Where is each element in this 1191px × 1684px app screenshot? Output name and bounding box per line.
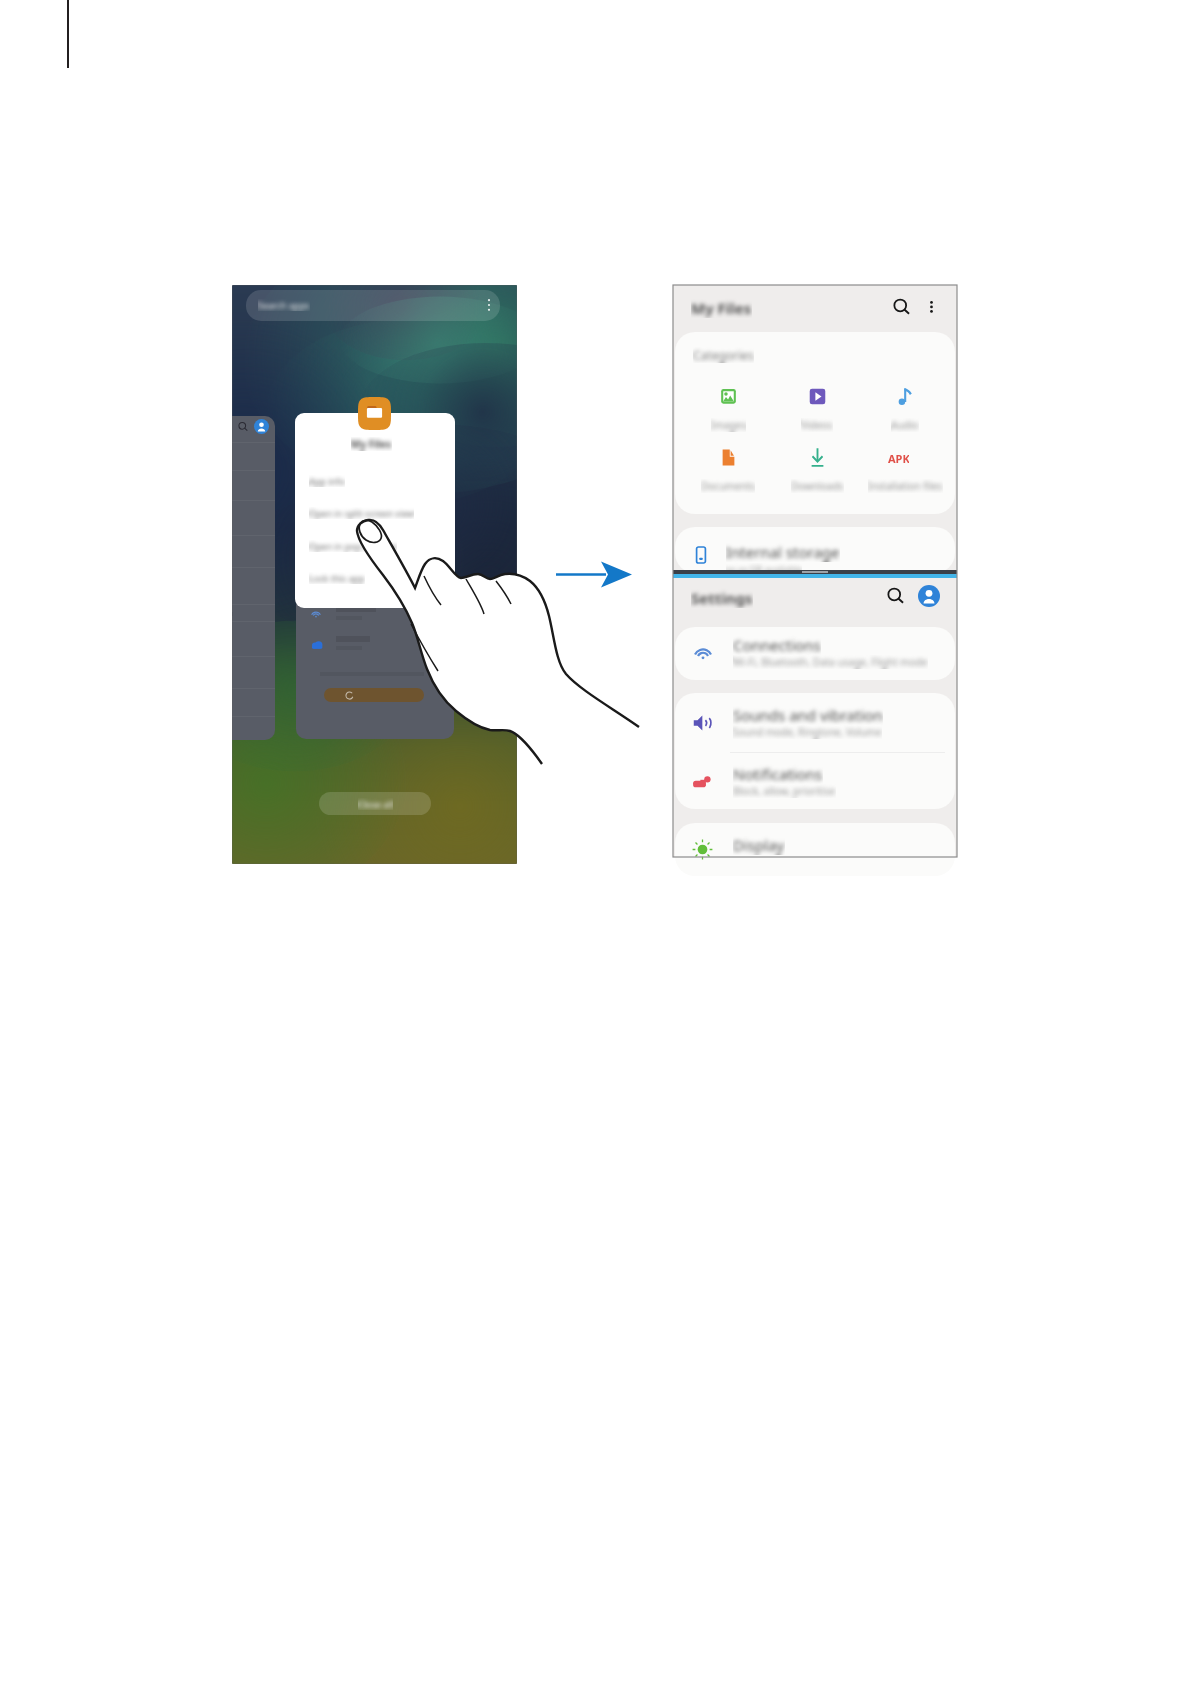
staticText: Open in split screen view (309, 507, 414, 519)
button[interactable]: Display (675, 823, 955, 876)
button[interactable]: App info (295, 465, 455, 497)
button[interactable]: More options (922, 298, 941, 317)
button[interactable]: Audio (863, 386, 947, 438)
button[interactable]: Lock this app (295, 562, 455, 594)
button[interactable]: Open in split screen view (295, 497, 455, 529)
button[interactable]: My Files recent task (296, 416, 454, 739)
staticText: Internal storage (726, 542, 840, 562)
button[interactable]: Sounds and vibration (675, 693, 955, 752)
staticText: App info (309, 475, 345, 487)
staticText: Close all (358, 798, 393, 810)
button[interactable]: Search (891, 297, 912, 318)
staticText: Sounds and vibration (733, 705, 883, 725)
staticText: Connections (733, 635, 821, 655)
staticText: Wi-Fi, Bluetooth, Data usage, Flight mod… (733, 655, 928, 669)
staticText: APK (888, 451, 909, 466)
button[interactable]: Recent app (232, 416, 275, 740)
button[interactable]: APK (863, 447, 947, 499)
staticText: Settings (691, 588, 753, 608)
staticText: Search apps (258, 299, 310, 311)
staticText: Documents (701, 479, 755, 493)
staticText: Audio (891, 418, 919, 432)
staticText: My Files (351, 437, 392, 451)
staticText: Display (733, 835, 785, 855)
staticText: My Files (691, 298, 752, 318)
button[interactable]: Downloads (775, 447, 859, 499)
button[interactable]: More options (484, 293, 494, 317)
staticText: Sound mode, Ringtone, Volume (733, 725, 882, 739)
button[interactable]: Internal storage (675, 527, 955, 570)
staticText: Installation files (868, 479, 943, 493)
staticText: Notifications (733, 764, 823, 784)
button[interactable]: Search settings (885, 586, 906, 607)
staticText: Videos (801, 418, 833, 432)
button[interactable]: Open in pop-up view (295, 530, 455, 562)
button[interactable]: Search apps (246, 290, 500, 321)
staticText: Images (711, 418, 746, 432)
button[interactable]: Documents (686, 447, 770, 499)
staticText: xx.xx GB available (726, 563, 802, 570)
button[interactable]: Videos (775, 386, 859, 438)
button[interactable]: Samsung account (918, 585, 940, 607)
button[interactable]: Images (686, 386, 770, 438)
staticText: Downloads (791, 479, 844, 493)
staticText: Open in pop-up view (309, 540, 397, 552)
staticText: Block, allow, prioritise (733, 784, 836, 798)
button[interactable]: Connections (675, 627, 955, 680)
staticText: Categories (693, 347, 754, 363)
button[interactable]: Close all (319, 792, 431, 815)
button[interactable]: Notifications (675, 752, 955, 809)
staticText: Lock this app (309, 572, 365, 584)
